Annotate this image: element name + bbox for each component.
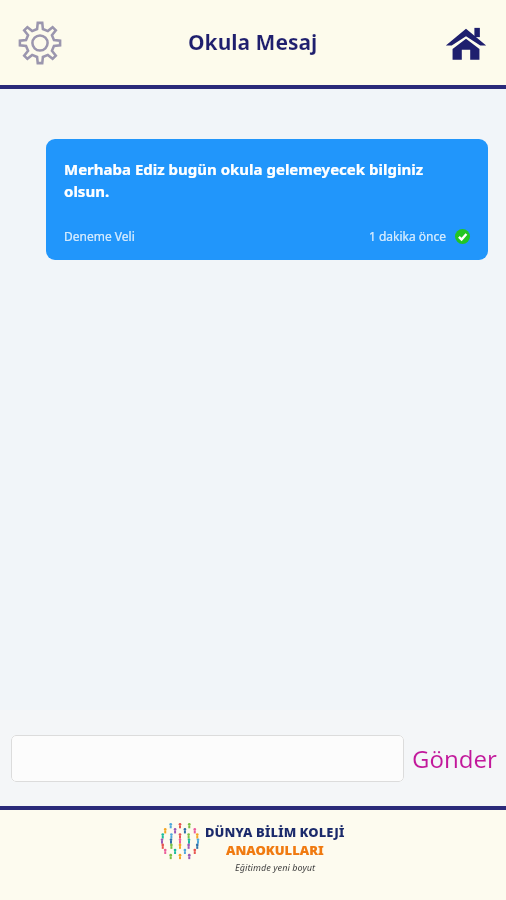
button[interactable]: Home [438, 15, 494, 71]
staticText: DÜNYA BİLİM KOLEJİ [205, 823, 345, 841]
staticText: Gönder [412, 742, 498, 775]
button[interactable]: Merhaba Ediz bugün okula gelemeyecek bil… [46, 139, 488, 260]
staticText: Eğitimde yeni boyut [235, 861, 316, 873]
staticText: 1 dakika önce [369, 228, 447, 244]
button[interactable]: Gönder [410, 736, 500, 781]
staticText: ANAOKULLARI [226, 841, 324, 859]
button[interactable] [11, 735, 404, 782]
staticText: Merhaba Ediz bugün okula gelemeyecek bil… [64, 159, 470, 202]
staticText: Okula Mesaj [188, 28, 318, 57]
staticText: Deneme Veli [64, 228, 135, 244]
button[interactable]: Settings [10, 13, 70, 73]
